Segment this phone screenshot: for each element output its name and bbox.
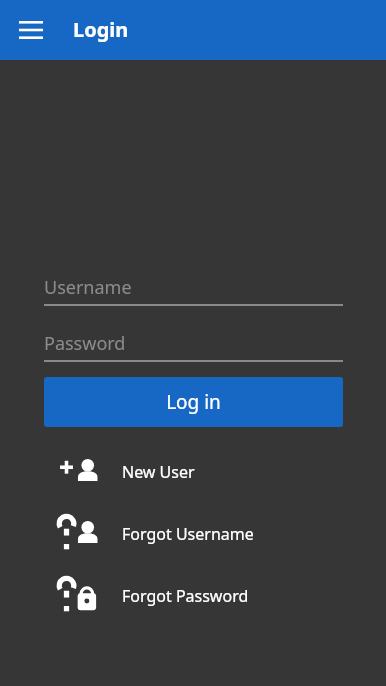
staticText: Forgot Password [122, 585, 249, 607]
button[interactable]: New User [0, 441, 386, 503]
button[interactable]: Forgot Password [0, 565, 386, 627]
staticText: Password [44, 331, 126, 356]
staticText: Log in [166, 389, 221, 415]
button[interactable]: Log in [44, 377, 343, 427]
button[interactable]: Open navigation menu [10, 9, 52, 51]
staticText: Login [73, 16, 129, 43]
button[interactable]: Forgot Username [0, 503, 386, 565]
staticText: Forgot Username [122, 523, 254, 545]
staticText: New User [122, 461, 195, 483]
button[interactable]: Username [44, 271, 343, 306]
staticText: Username [44, 275, 132, 300]
button[interactable]: Password [44, 327, 343, 362]
